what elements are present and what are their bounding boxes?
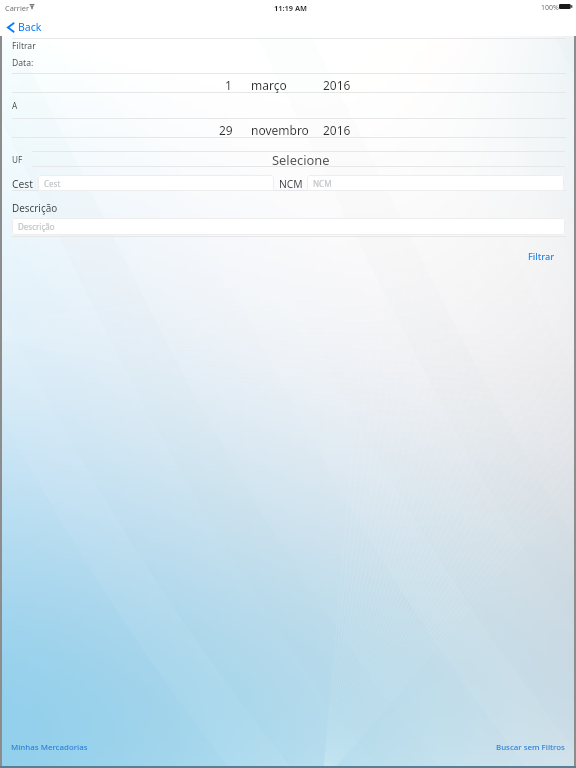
staticText: Filtrar <box>528 250 555 263</box>
button[interactable]: Descrição <box>12 218 565 235</box>
staticText: Data: <box>12 57 34 69</box>
button[interactable]: 1 <box>0 73 576 93</box>
staticText: Back <box>18 20 42 34</box>
staticText: Descrição <box>12 201 58 214</box>
staticText: NCM <box>313 178 332 189</box>
staticText: março <box>251 77 287 93</box>
staticText: A <box>12 100 18 111</box>
staticText: 11:19 AM <box>274 3 307 13</box>
staticText: Cest <box>44 178 61 189</box>
staticText: Minhas Mercadorias <box>11 742 88 753</box>
staticText: 29 <box>219 122 233 138</box>
button[interactable]: 29 <box>0 118 576 138</box>
staticText: novembro <box>251 122 309 138</box>
staticText: UF <box>12 154 23 165</box>
button[interactable]: UF <box>0 151 576 166</box>
staticText: Carrier <box>5 3 30 13</box>
staticText: 100% <box>541 3 559 13</box>
staticText: Selecione <box>272 151 330 166</box>
staticText: Filtrar <box>12 40 36 52</box>
button[interactable]: Buscar sem Filtros <box>490 739 576 756</box>
button[interactable]: Minhas Mercadorias <box>0 739 94 756</box>
staticText: 2016 <box>323 77 351 93</box>
staticText: 2016 <box>323 122 351 138</box>
staticText: Cest <box>12 177 33 191</box>
button[interactable]: NCM <box>307 175 564 191</box>
staticText: Descrição <box>18 221 55 232</box>
button[interactable]: Back <box>5 19 44 35</box>
staticText: Buscar sem Filtros <box>496 742 565 753</box>
staticText: NCM <box>279 177 303 191</box>
button[interactable]: Filtrar <box>520 247 563 266</box>
staticText: 1 <box>225 77 232 93</box>
button[interactable]: Cest <box>38 175 274 191</box>
